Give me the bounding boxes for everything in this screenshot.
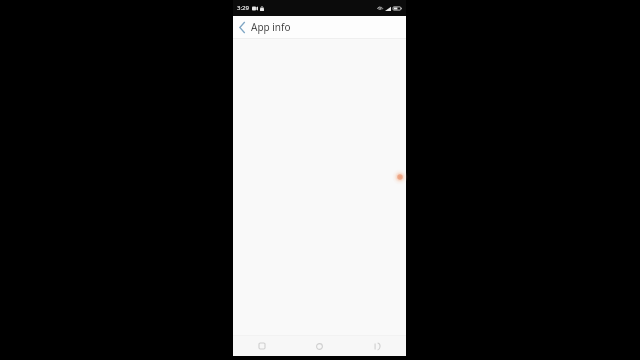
button[interactable]: Home [290,336,348,356]
staticText: 3:29 [237,4,249,12]
staticText: App info [251,20,291,34]
button[interactable]: Back [233,16,251,38]
button[interactable]: Recent apps [233,336,290,356]
button[interactable]: Back [348,336,406,356]
